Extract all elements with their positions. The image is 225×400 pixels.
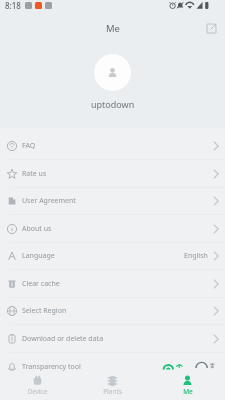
button[interactable]: Language: [0, 243, 225, 269]
button[interactable]: Plants: [75, 372, 150, 399]
staticText: Plants: [103, 387, 122, 396]
button[interactable]: Rate us: [0, 160, 225, 187]
staticText: English: [184, 251, 208, 261]
staticText: About us: [22, 224, 52, 234]
staticText: Clear cache: [22, 279, 60, 289]
button[interactable]: Device: [0, 372, 75, 399]
button[interactable]: User Agreement: [0, 188, 225, 214]
staticText: FAQ: [22, 141, 36, 151]
button[interactable]: About us: [0, 215, 225, 242]
button[interactable]: Edit profile: [203, 20, 219, 36]
button[interactable]: Download or delete data: [0, 325, 225, 352]
button[interactable]: Transparency tool: [0, 353, 225, 380]
button[interactable]: FAQ: [0, 133, 225, 159]
button[interactable]: Profile picture: [94, 54, 131, 91]
staticText: Language: [22, 251, 55, 261]
staticText: 8:18: [5, 0, 21, 11]
staticText: Me: [183, 387, 193, 396]
staticText: Transparency tool: [22, 362, 81, 372]
staticText: Select Region: [22, 306, 67, 316]
staticText: Device: [27, 387, 48, 396]
button[interactable]: Select Region: [0, 298, 225, 324]
button[interactable]: Clear cache: [0, 270, 225, 297]
button[interactable]: Me: [150, 372, 225, 399]
staticText: Rate us: [22, 169, 47, 179]
staticText: Me: [106, 22, 120, 35]
staticText: Download or delete data: [22, 334, 104, 344]
staticText: uptodown: [91, 98, 135, 110]
staticText: User Agreement: [22, 196, 76, 206]
